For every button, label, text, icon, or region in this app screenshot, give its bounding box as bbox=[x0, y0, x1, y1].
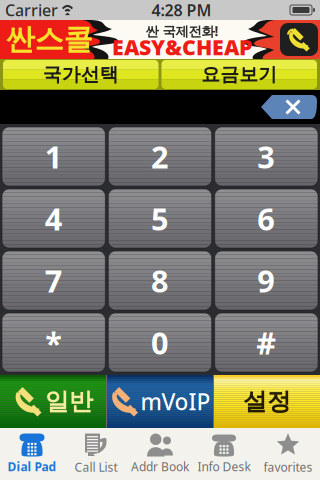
button[interactable]: # bbox=[215, 313, 318, 372]
button[interactable]: Addr Book bbox=[128, 428, 192, 480]
staticText: 8 bbox=[151, 260, 169, 301]
button[interactable]: 9 bbox=[215, 251, 318, 310]
staticText: 요금보기 bbox=[201, 63, 277, 86]
button[interactable]: 요금보기 bbox=[161, 60, 317, 89]
button[interactable]: Quick call bbox=[280, 23, 318, 56]
button[interactable]: * bbox=[2, 313, 105, 372]
staticText: 9 bbox=[257, 260, 275, 301]
button[interactable]: mVoIP bbox=[107, 375, 213, 428]
staticText: 6 bbox=[257, 198, 275, 239]
staticText: favorites bbox=[263, 459, 312, 475]
staticText: Addr Book bbox=[131, 458, 189, 474]
staticText: # bbox=[256, 322, 276, 363]
button[interactable]: 국가선택 bbox=[3, 60, 158, 89]
button[interactable]: 1 bbox=[2, 127, 105, 186]
staticText: 0 bbox=[151, 322, 169, 363]
staticText: 2 bbox=[151, 136, 169, 177]
staticText: Info Desk bbox=[197, 458, 250, 474]
staticText: 설정 bbox=[243, 387, 291, 416]
button[interactable]: favorites bbox=[256, 428, 320, 480]
button[interactable]: 6 bbox=[215, 189, 318, 248]
button[interactable]: Dial Pad bbox=[0, 428, 64, 480]
button[interactable]: 일반 bbox=[0, 375, 106, 428]
staticText: Dial Pad bbox=[7, 458, 56, 474]
staticText: 3 bbox=[257, 136, 275, 177]
staticText: 5 bbox=[151, 198, 169, 239]
button[interactable]: 3 bbox=[215, 127, 318, 186]
button[interactable]: 4 bbox=[2, 189, 105, 248]
staticText: EASY&CHEAP bbox=[112, 33, 252, 61]
button[interactable]: 2 bbox=[108, 127, 212, 186]
button[interactable]: 0 bbox=[108, 313, 212, 372]
staticText: 국가선택 bbox=[43, 63, 119, 86]
staticText: 싼 국제전화! bbox=[145, 22, 218, 40]
button[interactable]: Delete bbox=[261, 95, 317, 119]
staticText: 7 bbox=[45, 260, 63, 301]
button[interactable]: Call List bbox=[64, 428, 128, 480]
button[interactable]: 7 bbox=[2, 251, 105, 310]
button[interactable]: 설정 bbox=[214, 375, 320, 428]
staticText: mVoIP bbox=[140, 386, 210, 416]
staticText: Carrier bbox=[5, 0, 58, 21]
button[interactable]: Info Desk bbox=[192, 428, 256, 480]
button[interactable]: 5 bbox=[108, 189, 212, 248]
staticText: 일반 bbox=[45, 387, 93, 416]
staticText: 1 bbox=[45, 136, 63, 177]
staticText: 4 bbox=[45, 198, 63, 239]
button[interactable]: 8 bbox=[108, 251, 212, 310]
staticText: 싼스콜 bbox=[5, 21, 92, 57]
staticText: * bbox=[45, 322, 62, 363]
staticText: Call List bbox=[74, 459, 117, 475]
staticText: 4:28 PM bbox=[151, 0, 211, 21]
